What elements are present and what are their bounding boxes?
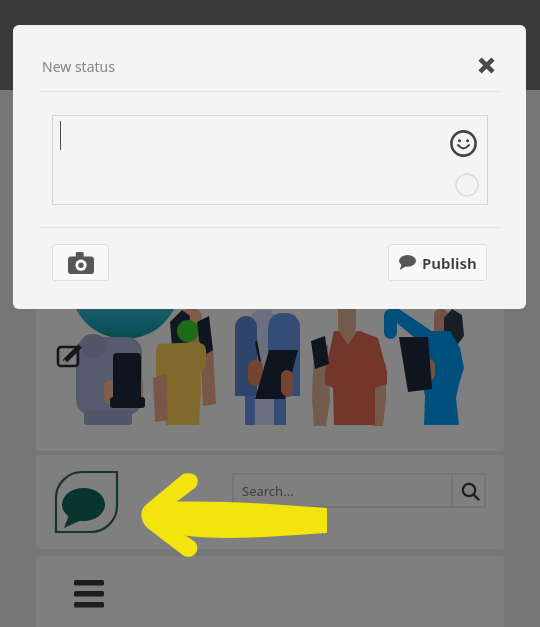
button[interactable]: Search... <box>233 474 452 507</box>
button[interactable]: Home <box>56 472 117 532</box>
button[interactable]: Emoji <box>444 124 482 162</box>
button[interactable]: Emoji <box>52 115 488 205</box>
button[interactable]: Publish <box>388 244 487 281</box>
staticText: Publish <box>422 253 477 273</box>
staticText: New status <box>42 57 115 76</box>
button[interactable]: Close <box>465 46 507 84</box>
button[interactable]: Menu <box>66 572 112 614</box>
button[interactable]: Search <box>454 474 487 508</box>
button[interactable]: Camera <box>52 244 109 281</box>
staticText: Search... <box>242 482 294 500</box>
